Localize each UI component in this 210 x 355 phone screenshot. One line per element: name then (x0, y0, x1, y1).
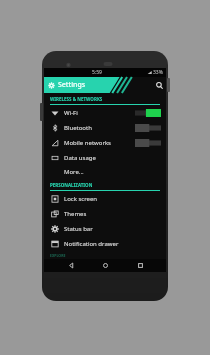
button[interactable]: Wi-Fi (44, 105, 166, 120)
staticText: 33% (153, 69, 163, 76)
staticText: 5:59 (92, 69, 102, 76)
button[interactable]: Bluetooth (44, 120, 166, 135)
staticText: Status bar (64, 225, 93, 233)
staticText: Wi-Fi (64, 109, 78, 117)
button[interactable]: Home (97, 259, 113, 272)
staticText: Notification drawer (64, 240, 119, 248)
button[interactable]: Notification drawer (44, 236, 166, 251)
staticText: More... (64, 168, 84, 176)
button[interactable]: Data usage (44, 150, 166, 165)
button[interactable]: Mobile networks (44, 135, 166, 150)
button[interactable]: More... (44, 165, 166, 179)
button[interactable]: Settings (48, 77, 86, 93)
staticText: Mobile networks (64, 139, 111, 147)
button[interactable]: Themes (44, 206, 166, 221)
staticText: EXPLORE (50, 253, 66, 258)
staticText: Data usage (64, 154, 96, 162)
button[interactable]: Back (63, 259, 79, 272)
button[interactable]: Lock screen (44, 191, 166, 206)
button[interactable]: Toggle on (135, 109, 161, 117)
button[interactable]: Recents (132, 259, 148, 272)
staticText: Lock screen (64, 195, 98, 203)
staticText: WIRELESS & NETWORKS (50, 96, 103, 102)
staticText: Bluetooth (64, 124, 92, 132)
staticText: Settings (58, 80, 86, 90)
button[interactable]: Search (152, 77, 166, 93)
button[interactable]: Status bar (44, 221, 166, 236)
staticText: Themes (64, 210, 87, 218)
staticText: PERSONALIZATION (50, 182, 93, 188)
button[interactable]: Toggle off (135, 124, 161, 132)
button[interactable]: Toggle off (135, 139, 161, 147)
